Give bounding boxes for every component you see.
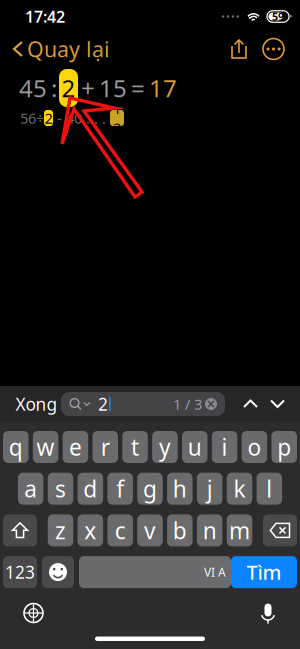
staticText: - 40 . . .: [53, 108, 110, 128]
button[interactable]: Kết quả trước: [237, 389, 264, 419]
button[interactable]: s: [48, 473, 73, 505]
button[interactable]: u: [182, 431, 207, 463]
button[interactable]: v: [137, 514, 163, 546]
staticText: Tìm: [246, 559, 281, 585]
button[interactable]: l: [257, 473, 282, 505]
staticText: s: [55, 474, 66, 504]
button[interactable]: Emoji: [42, 556, 74, 588]
button[interactable]: Xong: [12, 389, 61, 419]
button[interactable]: n: [197, 514, 222, 546]
button[interactable]: y: [152, 431, 178, 463]
staticText: g: [143, 474, 157, 504]
button[interactable]: p: [271, 431, 297, 463]
staticText: f: [116, 474, 124, 504]
staticText: h: [173, 474, 187, 504]
staticText: 45: [19, 72, 47, 104]
button[interactable]: e: [63, 431, 88, 463]
staticText: w: [37, 432, 55, 462]
button[interactable]: f: [107, 473, 133, 505]
button[interactable]: g: [137, 473, 163, 505]
button[interactable]: x: [78, 514, 103, 546]
staticText: :: [51, 72, 57, 104]
staticText: Quay lại: [27, 35, 110, 63]
staticText: b: [173, 515, 187, 545]
button[interactable]: Đổi bàn phím: [16, 595, 51, 630]
staticText: k: [233, 474, 245, 504]
staticText: d: [83, 474, 97, 504]
button[interactable]: h: [167, 473, 193, 505]
staticText: 56÷: [20, 108, 44, 128]
button[interactable]: Shift: [3, 514, 37, 546]
staticText: r: [101, 432, 110, 462]
button[interactable]: Delete: [263, 514, 297, 546]
button[interactable]: k: [227, 473, 252, 505]
staticText: =: [131, 72, 145, 104]
staticText: e: [69, 432, 82, 462]
button[interactable]: j: [197, 473, 222, 505]
staticText: o: [247, 432, 261, 462]
staticText: Xong: [15, 392, 57, 415]
button[interactable]: Tìm: [231, 556, 297, 588]
staticText: y: [159, 432, 171, 462]
staticText: n: [203, 515, 217, 545]
staticText: 17: [149, 72, 177, 104]
button[interactable]: d: [78, 473, 103, 505]
staticText: 123: [5, 561, 35, 584]
staticText: t: [131, 432, 139, 462]
staticText: 15: [99, 72, 127, 104]
staticText: VI A: [204, 564, 226, 580]
staticText: 2: [44, 108, 52, 128]
staticText: +: [81, 72, 95, 104]
button[interactable]: Chia sẻ: [223, 39, 255, 59]
button[interactable]: w: [33, 431, 58, 463]
button[interactable]: t: [122, 431, 148, 463]
button[interactable]: b: [167, 514, 193, 546]
button[interactable]: c: [107, 514, 133, 546]
staticText: 2: [98, 392, 108, 415]
button[interactable]: a: [18, 473, 43, 505]
staticText: a: [24, 474, 37, 504]
staticText: q: [9, 432, 23, 462]
staticText: l: [266, 474, 272, 504]
staticText: z: [55, 515, 66, 545]
button[interactable]: i: [212, 431, 237, 463]
button[interactable]: 123: [3, 556, 37, 588]
button[interactable]: VI A: [79, 556, 231, 588]
staticText: 17:42: [25, 6, 65, 27]
button[interactable]: m: [227, 514, 252, 546]
staticText: 59: [272, 9, 284, 24]
button[interactable]: Kết quả tiếp: [264, 389, 291, 419]
button[interactable]: Quay lại: [4, 33, 120, 65]
staticText: c: [115, 515, 126, 545]
staticText: p: [277, 432, 291, 462]
staticText: i: [222, 432, 228, 462]
button[interactable]: r: [92, 431, 118, 463]
button[interactable]: Đọc chính tả: [252, 594, 284, 632]
button[interactable]: o: [242, 431, 267, 463]
button[interactable]: z: [48, 514, 73, 546]
staticText: 12: [113, 98, 121, 137]
staticText: 1 / 3: [173, 394, 202, 414]
staticText: j: [207, 474, 213, 504]
staticText: x: [84, 515, 96, 545]
staticText: 2: [61, 72, 75, 104]
staticText: u: [188, 432, 202, 462]
button[interactable]: Thêm: [255, 38, 292, 59]
button[interactable]: q: [3, 431, 28, 463]
staticText: v: [144, 515, 156, 545]
staticText: m: [229, 515, 250, 545]
